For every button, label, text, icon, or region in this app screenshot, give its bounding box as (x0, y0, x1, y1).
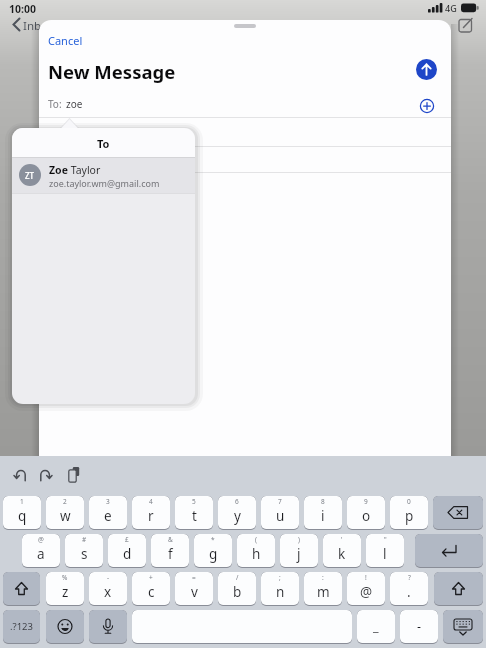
button[interactable] (3, 572, 40, 606)
staticText: ; (279, 573, 281, 582)
staticText: a (37, 545, 45, 563)
button[interactable]: # (65, 534, 103, 568)
staticText: : (322, 573, 324, 582)
button[interactable] (415, 534, 483, 568)
staticText: 2 (63, 497, 67, 506)
staticText: zoe.taylor.wm@gmail.com (49, 177, 160, 189)
button[interactable]: ; (261, 572, 299, 606)
staticText: 0 (407, 497, 411, 506)
button[interactable] (63, 463, 85, 485)
staticText: l (383, 545, 387, 563)
button[interactable]: @ (22, 534, 60, 568)
staticText: zoe (66, 97, 83, 111)
staticText: z (62, 583, 69, 601)
staticText: Cancel (48, 33, 83, 48)
staticText: ZT (25, 170, 35, 181)
button[interactable]: % (46, 572, 84, 606)
staticText: ? (408, 573, 411, 582)
staticText: 10:00 (9, 2, 36, 16)
staticText: ) (298, 535, 300, 544)
staticText: @ (360, 583, 373, 601)
button[interactable]: 8 (304, 496, 342, 530)
button[interactable] (132, 610, 352, 644)
button[interactable]: ' (323, 534, 361, 568)
staticText: & (168, 535, 173, 544)
button[interactable] (89, 610, 127, 644)
button[interactable]: & (151, 534, 189, 568)
staticText: ' (341, 535, 343, 544)
button[interactable]: - (89, 572, 127, 606)
staticText: c (148, 583, 155, 601)
button[interactable]: * (194, 534, 232, 568)
staticText: Zoe Taylor (49, 163, 101, 177)
button[interactable] (416, 59, 437, 80)
staticText: k (338, 545, 346, 563)
button[interactable]: .?123 (3, 610, 40, 644)
button[interactable]: + (132, 572, 170, 606)
button[interactable]: ( (237, 534, 275, 568)
button[interactable] (46, 610, 84, 644)
button[interactable] (413, 92, 441, 120)
button[interactable] (443, 610, 483, 644)
staticText: 6 (235, 497, 239, 506)
button[interactable]: ? (390, 572, 428, 606)
staticText: - (417, 618, 422, 635)
staticText: j (297, 545, 301, 563)
staticText: f (168, 545, 173, 563)
staticText: .?123 (10, 620, 33, 633)
staticText: % (62, 573, 68, 582)
button[interactable]: 2 (46, 496, 84, 530)
staticText: To: (48, 97, 62, 111)
staticText: y (234, 507, 241, 525)
button[interactable]: _ (357, 610, 395, 644)
staticText: To (97, 136, 110, 151)
button[interactable]: 3 (89, 496, 127, 530)
staticText: w (60, 507, 71, 525)
staticText: 9 (364, 497, 368, 506)
button[interactable]: Cancel (43, 28, 78, 43)
staticText: _ (373, 618, 379, 635)
staticText: p (405, 507, 414, 525)
staticText: t (192, 507, 197, 525)
staticText: New Message (48, 59, 176, 84)
button[interactable]: 1 (3, 496, 41, 530)
button[interactable]: " (366, 534, 404, 568)
staticText: = (192, 573, 196, 582)
button[interactable]: ) (280, 534, 318, 568)
staticText: 8 (321, 497, 325, 506)
staticText: " (384, 535, 387, 544)
staticText: q (18, 507, 27, 525)
staticText: Inbo (23, 18, 49, 34)
staticText: / (236, 573, 239, 582)
staticText: n (276, 583, 285, 601)
staticText: * (211, 535, 215, 544)
staticText: £ (125, 535, 129, 544)
staticText: 3 (106, 497, 110, 506)
button[interactable]: ZT (12, 158, 195, 193)
button[interactable]: ! (347, 572, 385, 606)
button[interactable]: 0 (390, 496, 428, 530)
staticText: 4G (445, 2, 457, 14)
staticText: e (104, 507, 112, 525)
staticText: d (123, 545, 132, 563)
button[interactable]: = (175, 572, 213, 606)
staticText: ( (255, 535, 257, 544)
staticText: g (209, 545, 218, 563)
button[interactable]: 9 (347, 496, 385, 530)
button[interactable]: - (400, 610, 438, 644)
button[interactable] (433, 496, 483, 530)
button[interactable] (10, 464, 32, 486)
button[interactable] (34, 464, 56, 486)
button[interactable]: / (218, 572, 256, 606)
staticText: m (317, 583, 330, 601)
button[interactable]: 7 (261, 496, 299, 530)
staticText: i (321, 507, 325, 525)
staticText: 4 (149, 497, 153, 506)
button[interactable]: 4 (132, 496, 170, 530)
button[interactable]: : (304, 572, 342, 606)
button[interactable] (434, 572, 483, 606)
staticText: + (149, 573, 153, 582)
button[interactable]: 6 (218, 496, 256, 530)
button[interactable]: £ (108, 534, 146, 568)
button[interactable]: 5 (175, 496, 213, 530)
